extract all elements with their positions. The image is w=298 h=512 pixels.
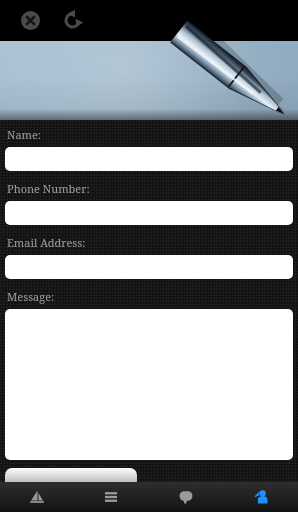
button[interactable]: Close	[10, 0, 50, 40]
button[interactable]	[5, 201, 293, 225]
button[interactable]	[5, 468, 137, 482]
button[interactable]: Messages	[148, 482, 223, 512]
button[interactable]	[5, 147, 293, 171]
button[interactable]: Refresh	[52, 0, 92, 40]
staticText: Name:	[7, 127, 42, 142]
button[interactable]: Home	[0, 482, 74, 512]
staticText: Email Address:	[7, 235, 86, 250]
button[interactable]	[5, 255, 293, 279]
staticText: Phone Number:	[7, 181, 90, 196]
button[interactable]	[5, 309, 293, 460]
button[interactable]: Contact	[223, 482, 298, 512]
button[interactable]: Menu	[74, 482, 148, 512]
staticText: Message:	[7, 289, 55, 304]
